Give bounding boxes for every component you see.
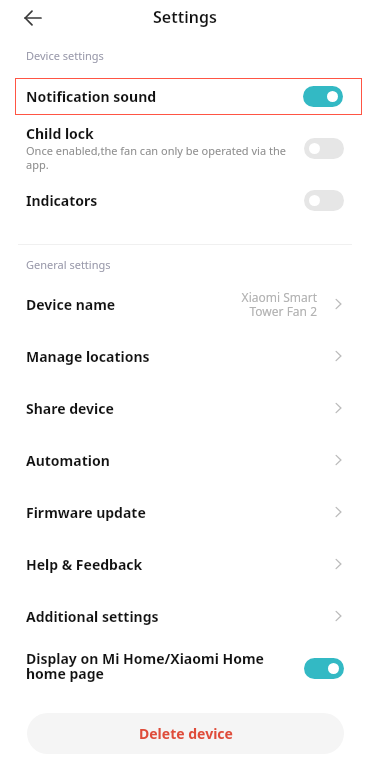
button[interactable]: Switch on <box>303 86 343 107</box>
staticText: Help & Feedback <box>26 555 143 574</box>
staticText: Device settings <box>26 48 104 63</box>
staticText: General settings <box>26 257 111 272</box>
staticText: Settings <box>153 6 217 28</box>
button[interactable]: Switch off <box>304 138 344 159</box>
button[interactable]: Child lock <box>0 124 369 176</box>
staticText: Notification sound <box>26 87 157 106</box>
button[interactable]: Switch on <box>304 658 344 679</box>
staticText: Share device <box>26 399 114 418</box>
staticText: Child lock <box>26 124 94 143</box>
staticText: Indicators <box>26 191 98 210</box>
button[interactable]: Automation <box>0 434 369 486</box>
button[interactable]: Help & Feedback <box>0 538 369 590</box>
staticText: Firmware update <box>26 503 146 522</box>
staticText: Xiaomi Smart Tower Fan 2 <box>237 289 317 319</box>
button[interactable]: Back <box>21 6 45 30</box>
staticText: Delete device <box>139 724 233 743</box>
button[interactable]: Indicators <box>0 179 369 221</box>
staticText: Display on Mi Home/Xiaomi Home home page <box>26 649 290 683</box>
button[interactable]: Manage locations <box>0 330 369 382</box>
button[interactable]: Display on Mi Home/Xiaomi Home home page <box>0 642 369 694</box>
button[interactable]: Firmware update <box>0 486 369 538</box>
button[interactable]: Additional settings <box>0 590 369 642</box>
button[interactable]: Switch off <box>304 190 344 211</box>
staticText: Manage locations <box>26 347 150 366</box>
button[interactable]: Share device <box>0 382 369 434</box>
button[interactable]: Delete device <box>27 713 344 754</box>
staticText: Additional settings <box>26 607 159 626</box>
staticText: Automation <box>26 451 110 470</box>
staticText: Once enabled,the fan can only be operate… <box>26 143 292 172</box>
staticText: Device name <box>26 295 116 314</box>
button[interactable]: Notification sound <box>15 78 362 115</box>
button[interactable]: Device name <box>0 278 369 330</box>
